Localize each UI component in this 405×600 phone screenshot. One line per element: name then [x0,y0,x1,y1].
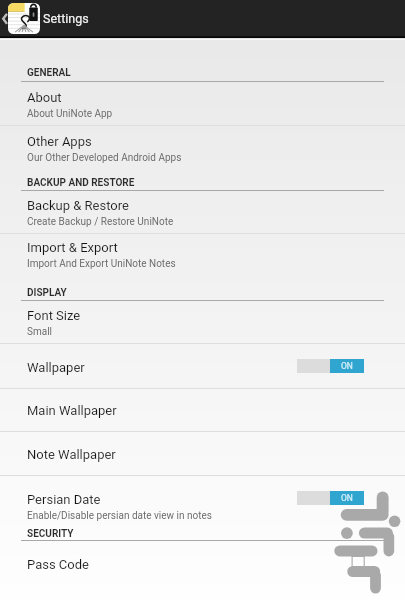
staticText: GENERAL [27,67,71,79]
staticText: DISPLAY [27,287,67,299]
staticText: Font Size [27,308,81,323]
staticText: Enable/Disable persian date view in note… [27,510,212,522]
staticText: Backup & Restore [27,198,129,213]
button[interactable]: Toggle [297,491,364,505]
staticText: Persian Date [27,492,101,507]
staticText: Wallpaper [27,360,85,375]
button[interactable]: Other Apps [0,126,405,168]
staticText: Create Backup / Restore UniNote [27,216,174,228]
button[interactable]: Backup & Restore [0,193,405,234]
staticText: About [27,90,62,105]
staticText: Pass Code [27,557,89,572]
staticText: Import And Export UniNote Notes [27,258,176,270]
staticText: Note Wallpaper [27,447,116,462]
button[interactable]: Persian Date [0,476,405,519]
staticText: BACKUP AND RESTORE [27,177,135,189]
staticText: Settings [43,11,89,26]
button[interactable]: About [0,84,405,126]
staticText: About UniNote App [27,108,113,120]
button[interactable]: Font Size [0,302,405,344]
staticText: SECURITY [27,528,74,540]
staticText: Our Other Developed Android Apps [27,152,182,164]
button[interactable]: Main Wallpaper [0,389,405,432]
staticText: ON [341,361,353,371]
button[interactable]: Toggle [297,359,364,373]
staticText: Small [27,326,53,338]
button[interactable]: Navigate up [0,0,42,36]
staticText: Other Apps [27,134,92,149]
staticText: Main Wallpaper [27,403,117,418]
button[interactable]: Import & Export [0,234,405,277]
staticText: ON [341,493,353,503]
button[interactable]: Pass Code [0,543,405,588]
button[interactable]: Note Wallpaper [0,432,405,476]
button[interactable]: Wallpaper [0,344,405,389]
staticText: Import & Export [27,240,118,255]
